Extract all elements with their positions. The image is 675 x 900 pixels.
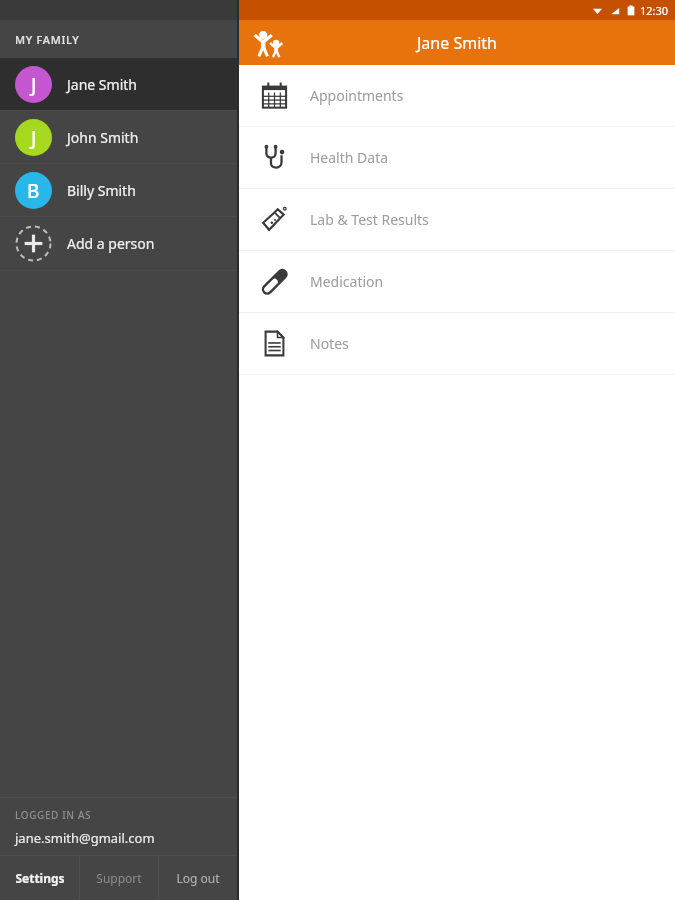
button[interactable]: Lab & Test Results [239, 189, 675, 250]
staticText: Jane Smith [67, 75, 137, 94]
staticText: Health Data [310, 148, 389, 167]
staticText: Billy Smith [67, 181, 136, 200]
staticText: Lab & Test Results [310, 210, 429, 229]
staticText: 12:30 [640, 3, 669, 18]
button[interactable]: Family [250, 23, 290, 63]
button[interactable]: B [0, 164, 237, 216]
staticText: Support [96, 870, 142, 886]
button[interactable]: J [0, 58, 237, 110]
staticText: John Smith [67, 128, 139, 147]
button[interactable]: Medication [239, 251, 675, 312]
staticText: Log out [176, 870, 220, 886]
button[interactable]: Health Data [239, 127, 675, 188]
button[interactable]: Add a person [0, 217, 237, 270]
staticText: Add a person [67, 234, 155, 253]
staticText: Jane Smith [417, 32, 497, 54]
staticText: Settings [15, 870, 65, 886]
button[interactable]: Appointments [239, 65, 675, 126]
staticText: Medication [310, 272, 384, 291]
staticText: MY FAMILY [15, 32, 80, 47]
button[interactable]: Notes [239, 313, 675, 374]
staticText: Appointments [310, 86, 404, 105]
staticText: B [27, 178, 40, 204]
button[interactable]: Support [80, 856, 158, 900]
staticText: jane.smith@gmail.com [15, 829, 155, 847]
staticText: Notes [310, 334, 349, 353]
staticText: J [31, 72, 37, 98]
button[interactable]: Log out [159, 856, 237, 900]
button[interactable]: J [0, 111, 237, 163]
staticText: LOGGED IN AS [15, 808, 92, 822]
button[interactable]: Settings [0, 856, 79, 900]
staticText: J [31, 125, 37, 151]
